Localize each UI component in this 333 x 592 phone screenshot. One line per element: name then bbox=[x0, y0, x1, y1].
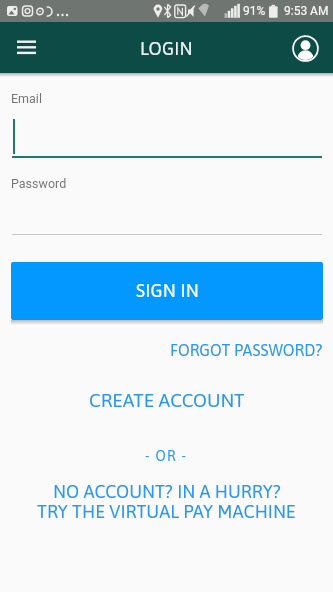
staticText: LOGIN bbox=[140, 38, 193, 59]
button[interactable] bbox=[8, 29, 44, 65]
button[interactable]: TRY THE VIRTUAL PAY MACHINE bbox=[37, 501, 296, 522]
staticText: Email bbox=[11, 91, 42, 106]
button[interactable]: SIGN IN bbox=[11, 262, 323, 320]
button[interactable]: NO ACCOUNT? IN A HURRY? bbox=[53, 481, 281, 502]
staticText: 9:53 AM bbox=[284, 4, 329, 18]
staticText: 91% bbox=[243, 4, 266, 18]
staticText: - OR - bbox=[145, 448, 188, 464]
button[interactable]: FORGOT PASSWORD? bbox=[170, 341, 323, 359]
button[interactable] bbox=[286, 29, 324, 67]
staticText: Password bbox=[11, 176, 67, 191]
button[interactable]: CREATE ACCOUNT bbox=[89, 389, 245, 411]
staticText: SIGN IN bbox=[136, 280, 199, 301]
